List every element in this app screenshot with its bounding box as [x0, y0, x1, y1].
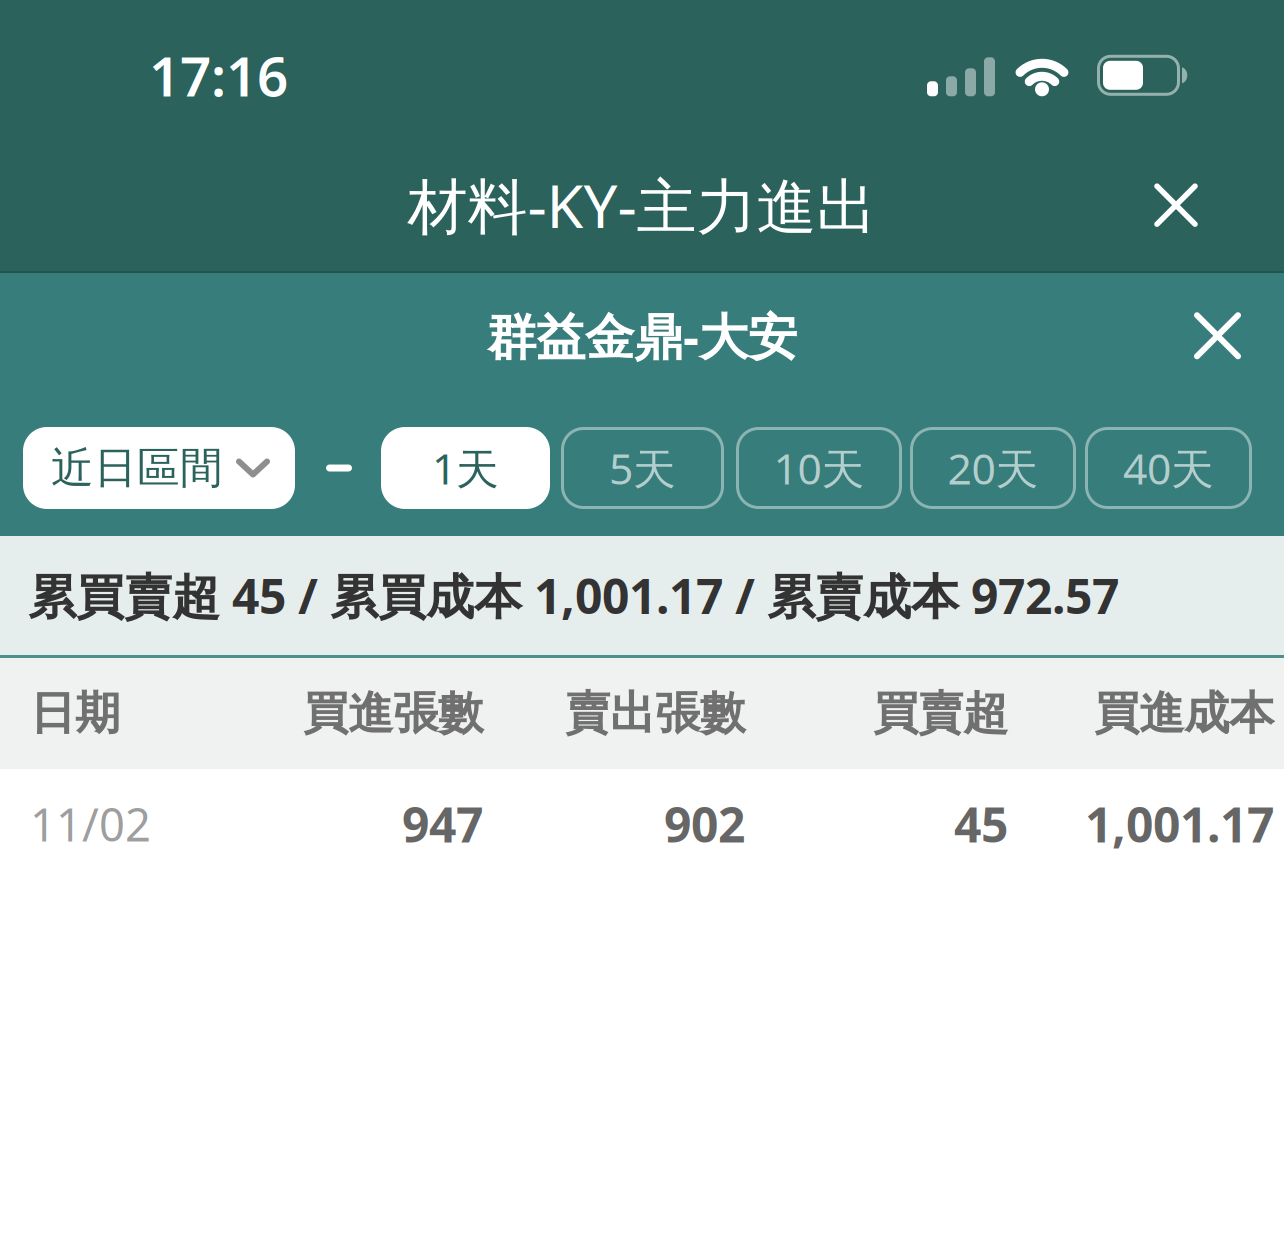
button[interactable]: 1天 [381, 427, 550, 509]
staticText: 近日區間 [51, 442, 223, 494]
staticText: 40天 [1123, 440, 1214, 496]
staticText: 10天 [773, 440, 864, 496]
button[interactable]: Close [1185, 303, 1250, 368]
staticText: 947 [402, 792, 483, 856]
staticText: 5天 [609, 440, 676, 496]
staticText: 902 [664, 792, 745, 856]
staticText: 買進張數 [303, 686, 483, 741]
staticText: 買賣超 [873, 686, 1008, 741]
staticText: 20天 [947, 440, 1038, 496]
button[interactable]: 近日區間 [23, 427, 295, 509]
staticText: 17:16 [149, 39, 288, 112]
staticText: 1天 [432, 440, 499, 496]
staticText: 累買賣超 45 / 累買成本 1,001.17 / 累賣成本 972.57 [28, 564, 1119, 627]
button[interactable]: 5天 [561, 427, 724, 509]
staticText: 11/02 [30, 794, 151, 854]
staticText: 1,001.17 [1085, 792, 1274, 856]
button[interactable]: 10天 [736, 427, 902, 509]
staticText: 買進成本 [1094, 686, 1274, 741]
staticText: 日期 [30, 686, 120, 741]
button[interactable]: 20天 [910, 427, 1076, 509]
staticText: 45 [954, 792, 1008, 856]
staticText: 材料-KY-主力進出 [407, 165, 876, 245]
staticText: 群益金鼎-大安 [487, 303, 797, 368]
staticText: 賣出張數 [565, 686, 745, 741]
button[interactable]: 40天 [1085, 427, 1252, 509]
button[interactable]: Close [1143, 172, 1209, 238]
